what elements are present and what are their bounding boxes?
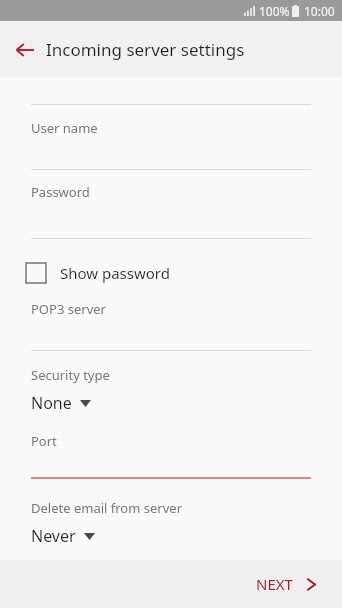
staticText: NEXT: [256, 574, 293, 594]
button[interactable]: None: [31, 388, 111, 418]
staticText: None: [31, 392, 72, 414]
button[interactable]: NEXT: [236, 560, 342, 608]
staticText: 10:00: [304, 3, 335, 19]
staticText: User name: [31, 119, 98, 137]
staticText: POP3 server: [31, 300, 106, 318]
staticText: Port: [31, 432, 57, 450]
staticText: Never: [31, 525, 76, 547]
button[interactable]: Never: [31, 521, 117, 551]
staticText: Security type: [31, 366, 110, 384]
staticText: Incoming server settings: [46, 38, 245, 61]
staticText: Password: [31, 183, 90, 201]
staticText: Show password: [60, 263, 170, 283]
button[interactable]: Navigate up: [8, 33, 42, 67]
staticText: 100%: [259, 3, 290, 19]
staticText: Delete email from server: [31, 499, 182, 517]
button[interactable]: Show password: [26, 256, 216, 290]
